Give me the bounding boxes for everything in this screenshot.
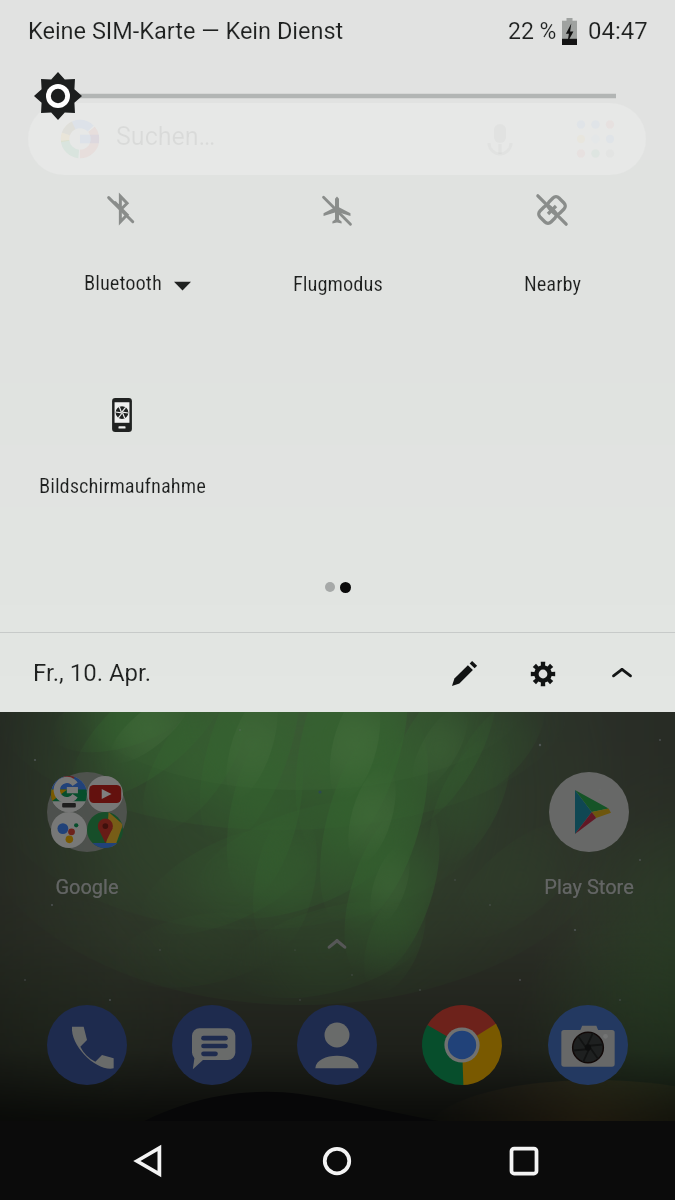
button[interactable]: Contacts [297, 1005, 377, 1085]
button[interactable] [229, 179, 445, 299]
button[interactable]: Back [125, 1136, 175, 1186]
button[interactable]: Brightness [0, 76, 675, 116]
button[interactable]: Home [312, 1136, 362, 1186]
button[interactable]: Google folder [47, 772, 127, 852]
staticText: Fr., 10. Apr. [33, 659, 152, 687]
button[interactable] [12, 178, 228, 298]
staticText: 04:47 [588, 17, 648, 45]
staticText: Keine SIM-Karte — Kein Dienst [28, 17, 344, 45]
button[interactable]: Edit [440, 650, 488, 698]
button[interactable]: Recents [499, 1136, 549, 1186]
staticText: Bildschirmaufnahme [39, 474, 206, 498]
staticText: Suchen… [116, 122, 216, 151]
staticText: 22 % [508, 18, 557, 45]
staticText: Flugmodus [293, 272, 383, 296]
button[interactable]: All apps [320, 928, 354, 962]
button[interactable]: Phone [47, 1005, 127, 1085]
staticText: Nearby [524, 272, 581, 296]
staticText: Google [0, 875, 177, 898]
button[interactable]: Camera [548, 1005, 628, 1085]
button[interactable]: Collapse [598, 649, 646, 697]
button[interactable] [14, 384, 230, 504]
staticText: Play Store [499, 875, 675, 898]
button[interactable]: Chrome [422, 1005, 502, 1085]
button[interactable]: Settings [519, 650, 567, 698]
button[interactable]: Play Store [549, 772, 629, 852]
button[interactable]: Messages [172, 1005, 252, 1085]
button[interactable] [444, 179, 660, 299]
staticText: Bluetooth [84, 271, 162, 295]
